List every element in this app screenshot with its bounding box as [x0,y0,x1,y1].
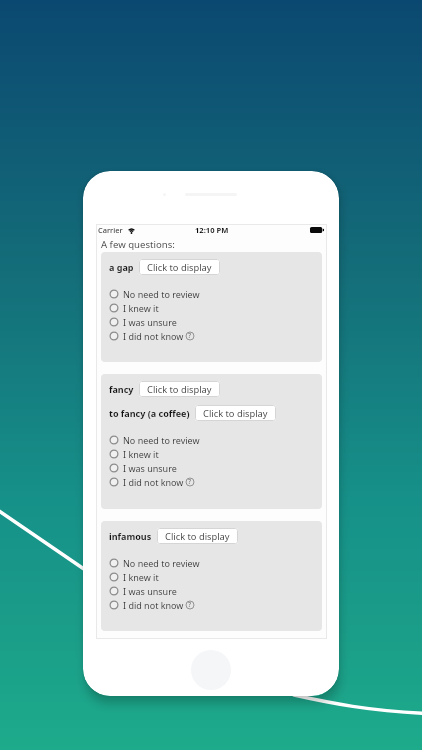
button[interactable]: Click to display [195,405,276,421]
button[interactable]: I knew it [109,447,314,461]
staticText: 12:10 PM [195,225,229,235]
staticText: A few questions: [101,238,175,251]
staticText: ? [188,331,192,341]
staticText: I knew it [123,448,159,460]
staticText: I was unsure [123,585,177,597]
button[interactable]: I did not know [109,475,314,489]
staticText: I was unsure [123,462,177,474]
staticText: I did not know [123,599,184,611]
staticText: Click to display [203,407,268,420]
button[interactable]: No need to review [109,556,314,570]
staticText: I did not know [123,476,184,488]
button[interactable]: I knew it [109,301,314,315]
button[interactable]: I was unsure [109,584,314,598]
staticText: Click to display [147,383,212,396]
button[interactable]: Click to display [139,381,220,397]
staticText: I did not know [123,330,184,342]
staticText: a gap [109,261,134,273]
staticText: Click to display [165,530,230,543]
button[interactable]: I did not know [109,598,314,612]
staticText: I was unsure [123,316,177,328]
button[interactable]: Help [185,477,195,487]
button[interactable]: Click to display [157,528,238,544]
staticText: Click to display [147,261,212,274]
button[interactable]: I knew it [109,570,314,584]
button[interactable]: I did not know [109,329,314,343]
button[interactable]: No need to review [109,433,314,447]
staticText: infamous [109,530,152,542]
button[interactable]: Help [185,331,195,341]
staticText: I knew it [123,571,159,583]
button[interactable]: I was unsure [109,461,314,475]
button[interactable]: I was unsure [109,315,314,329]
staticText: to fancy (a coffee) [109,407,190,419]
button[interactable]: Click to display [139,259,220,275]
button[interactable]: No need to review [109,287,314,301]
staticText: No need to review [123,434,200,446]
staticText: fancy [109,383,134,395]
staticText: No need to review [123,557,200,569]
staticText: No need to review [123,288,200,300]
staticText: ? [188,477,192,487]
staticText: I knew it [123,302,159,314]
staticText: Carrier [98,225,123,235]
button[interactable]: Help [185,600,195,610]
staticText: ? [188,600,192,610]
